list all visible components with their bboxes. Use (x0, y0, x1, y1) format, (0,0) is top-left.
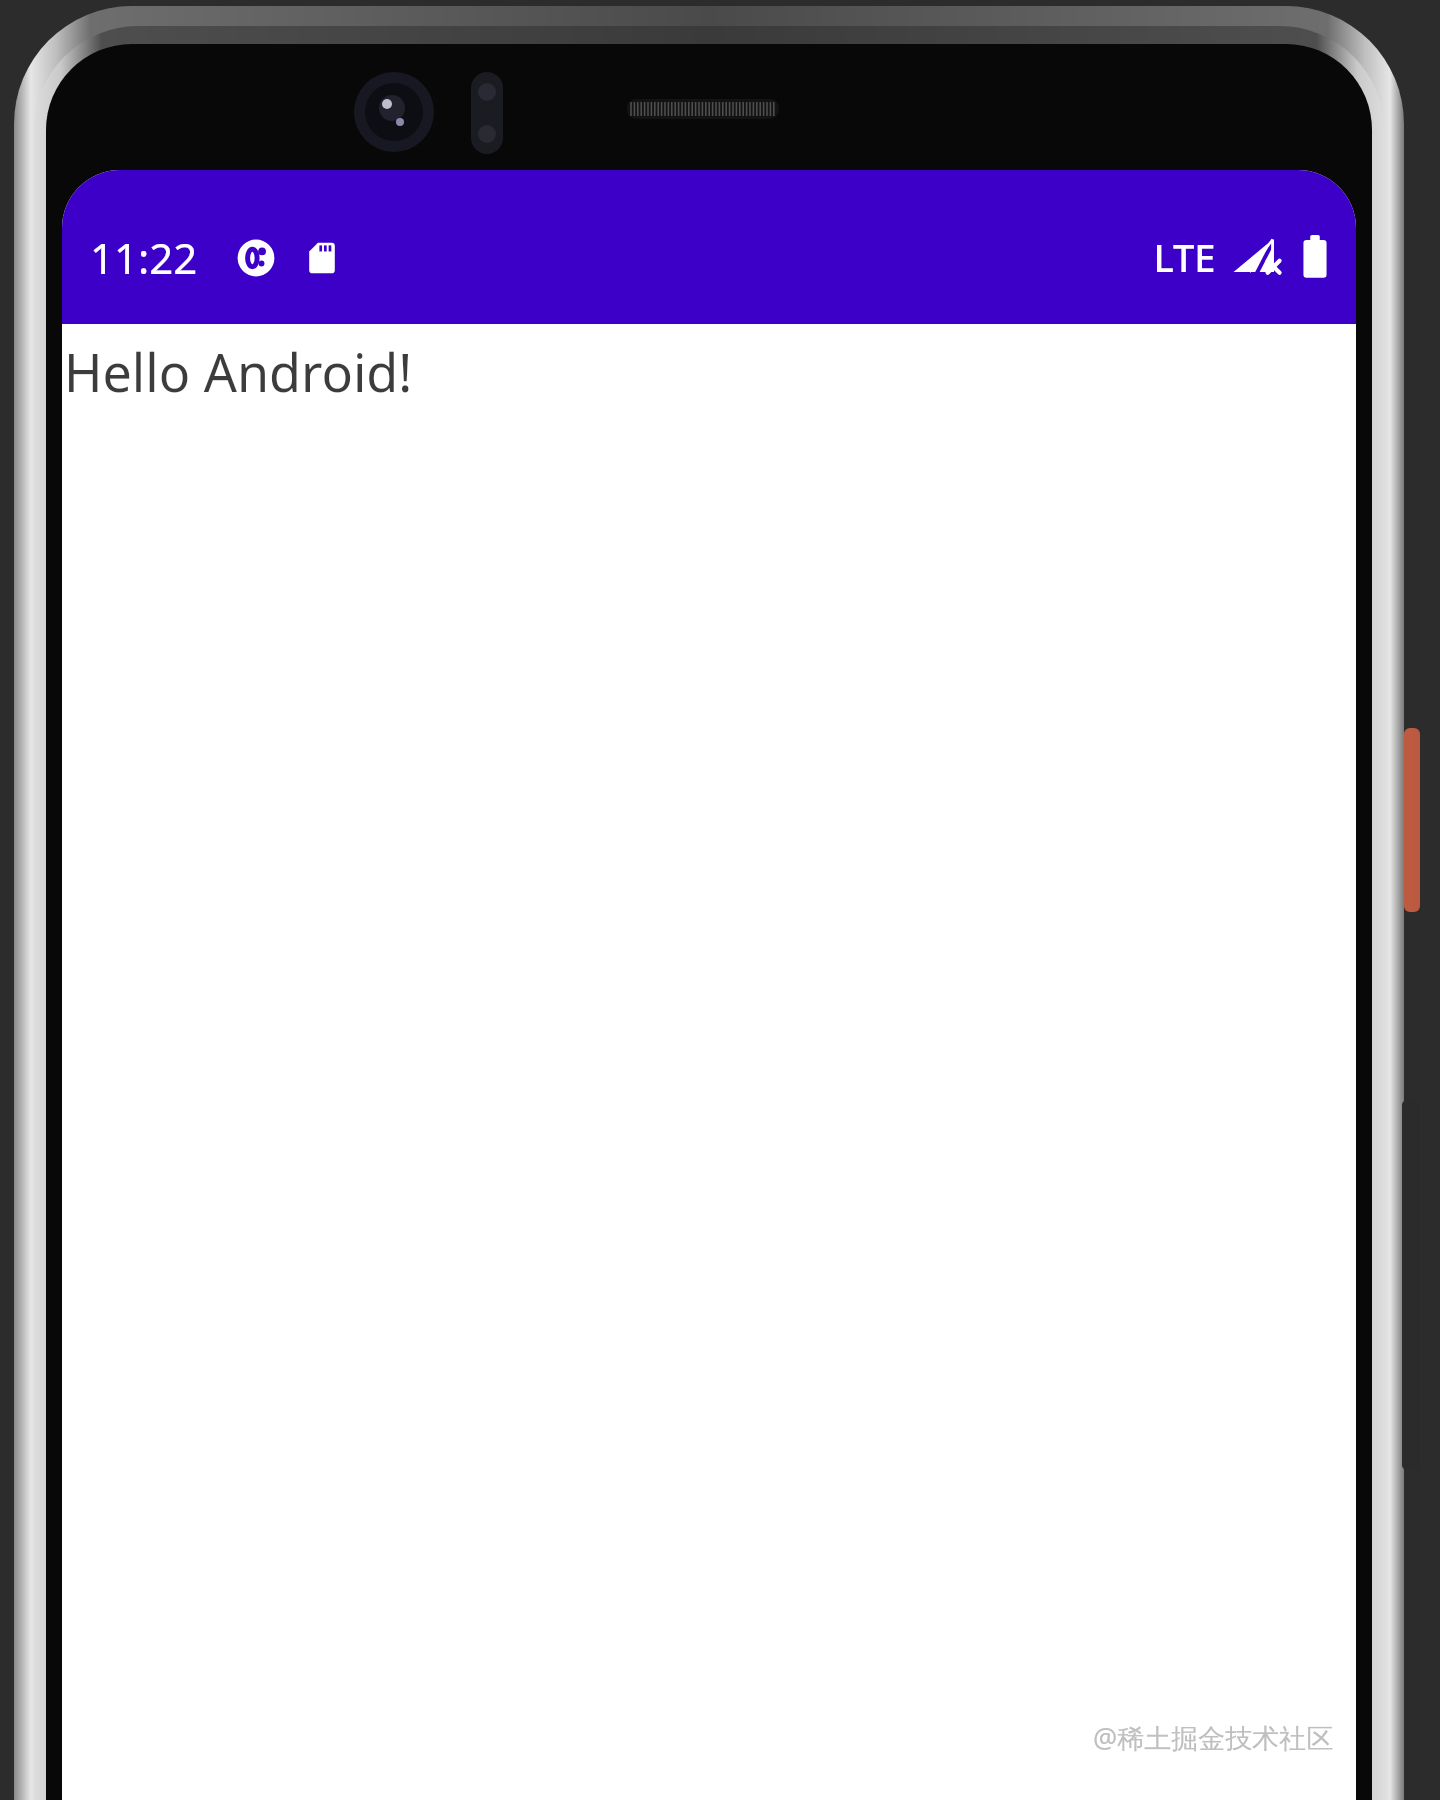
staticText: 11:22 (90, 229, 198, 286)
staticText: LTE (1153, 231, 1216, 283)
staticText: Hello Android! (64, 336, 413, 407)
staticText: @稀土掘金技术社区 (1093, 1719, 1334, 1756)
button[interactable]: Notification (236, 238, 276, 278)
button[interactable]: SD card (302, 238, 342, 278)
button[interactable]: No mobile signal (1232, 235, 1284, 279)
button[interactable]: Battery full (1298, 234, 1332, 280)
